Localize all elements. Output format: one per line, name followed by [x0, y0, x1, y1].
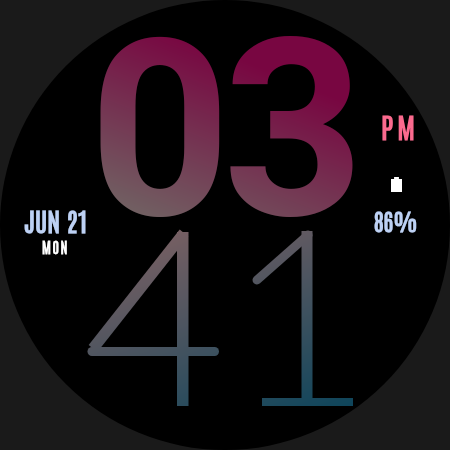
button[interactable]: JUN 21 — [24, 203, 89, 237]
staticText: 03 — [89, 0, 357, 275]
button[interactable]: Watch face — [0, 0, 450, 450]
button[interactable]: PM — [381, 108, 419, 144]
staticText: 86% — [374, 205, 418, 235]
staticText: JUN 21 — [24, 203, 89, 237]
staticText: PM — [381, 108, 419, 144]
button[interactable]: Battery 86 percent — [385, 172, 407, 194]
staticText: MON — [42, 238, 70, 256]
